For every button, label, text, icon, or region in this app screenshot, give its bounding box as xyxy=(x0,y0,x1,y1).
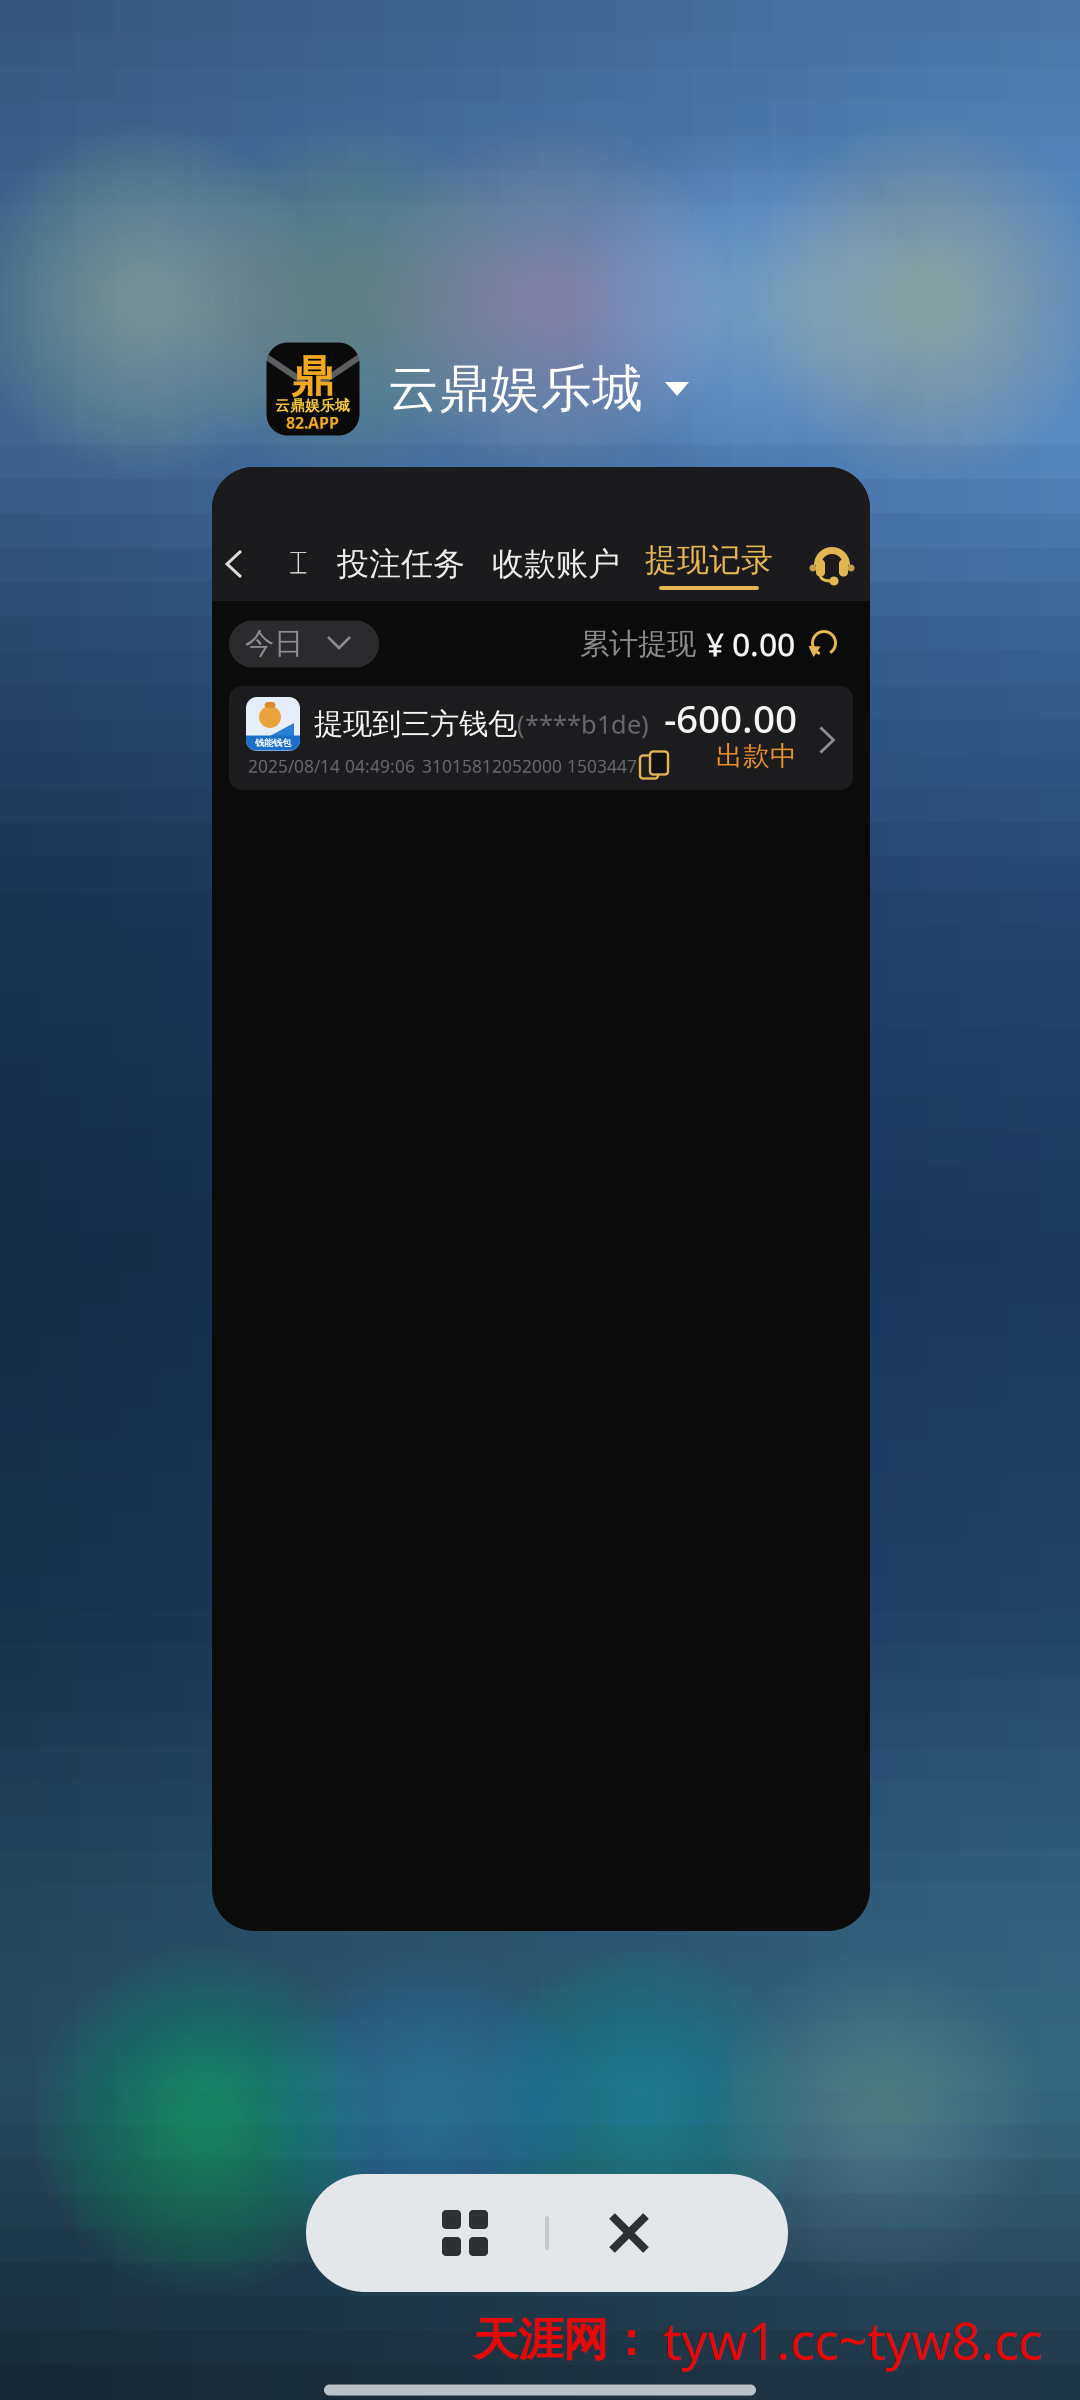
button[interactable]: Back xyxy=(207,529,261,599)
button[interactable]: All apps xyxy=(385,2172,545,2294)
button[interactable]: 收款账户 xyxy=(481,529,631,599)
staticText: 31015812052000 1503447 xyxy=(422,754,637,777)
staticText: 天涯网： xyxy=(473,2312,653,2368)
staticText: 投注任务 xyxy=(337,544,465,584)
staticText: 鼎 xyxy=(291,350,334,403)
staticText: 2025/08/14 04:49:06 xyxy=(248,754,415,777)
staticText: ⌶ xyxy=(288,548,307,580)
staticText: tyw1.cc~tyw8.cc xyxy=(663,2306,1042,2374)
button[interactable]: 今日 xyxy=(229,620,379,667)
staticText: ¥ 0.00 xyxy=(706,623,795,665)
staticText: 钱能钱包 xyxy=(255,737,291,749)
staticText: 提现记录 xyxy=(645,540,773,580)
staticText: 收款账户 xyxy=(492,544,620,584)
staticText: -600.00 xyxy=(664,692,797,744)
staticText: 提现到三方钱包 xyxy=(314,706,517,742)
button[interactable]: 投注任务 xyxy=(326,529,476,599)
button[interactable]: 云鼎娱乐城 xyxy=(388,354,689,424)
staticText: 今日 xyxy=(245,625,303,661)
staticText: (****b1de) xyxy=(517,707,649,741)
button[interactable]: 提现记录 xyxy=(634,532,784,602)
button[interactable]: 钱能钱包 xyxy=(229,686,853,790)
staticText: 累计提现 xyxy=(580,626,696,662)
button[interactable]: Close all xyxy=(549,2172,709,2294)
button[interactable]: Customer service xyxy=(797,529,867,599)
staticText: 云鼎娱乐城 xyxy=(388,358,643,420)
staticText: 出款中 xyxy=(716,740,797,772)
staticText: 云鼎娱乐城 xyxy=(275,396,350,414)
staticText: 82.APP xyxy=(286,412,339,433)
button[interactable]: Refresh xyxy=(805,625,843,663)
